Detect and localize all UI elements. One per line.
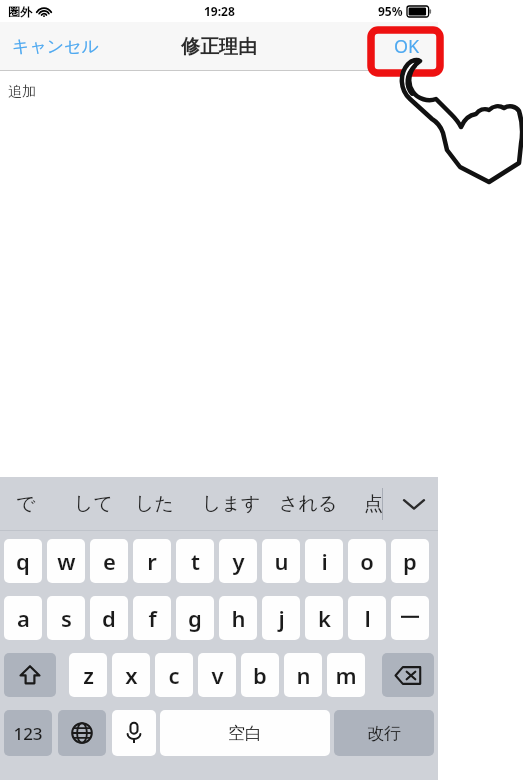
staticText: o — [360, 546, 374, 576]
button[interactable]: 音声入力 — [112, 710, 156, 756]
staticText: i — [321, 546, 328, 576]
button[interactable]: Backspace — [382, 653, 434, 697]
button[interactable]: して — [74, 477, 113, 531]
button[interactable]: s — [47, 596, 85, 640]
staticText: r — [147, 546, 157, 576]
button[interactable]: h — [219, 596, 257, 640]
staticText: 123 — [13, 722, 43, 745]
button[interactable]: o — [348, 539, 386, 583]
button[interactable]: 空白 — [160, 710, 330, 756]
staticText: n — [296, 660, 311, 690]
staticText: k — [318, 603, 331, 633]
button[interactable]: k — [305, 596, 343, 640]
staticText: s — [61, 603, 72, 633]
button[interactable]: z — [69, 653, 107, 697]
staticText: して — [74, 492, 113, 516]
staticText: p — [403, 546, 417, 576]
button[interactable]: Shift — [4, 653, 56, 697]
staticText: u — [274, 546, 289, 576]
staticText: した — [135, 492, 174, 516]
button[interactable]: y — [219, 539, 257, 583]
button[interactable]: j — [262, 596, 300, 640]
button[interactable]: キャンセル — [12, 36, 99, 57]
button[interactable]: 追加 — [0, 71, 438, 477]
staticText: l — [364, 603, 371, 633]
staticText: w — [57, 546, 76, 576]
button[interactable]: します — [202, 477, 261, 531]
staticText: 点 — [364, 492, 383, 516]
button[interactable]: l — [348, 596, 386, 640]
staticText: 改行 — [367, 723, 401, 744]
button[interactable]: g — [176, 596, 214, 640]
button[interactable]: p — [391, 539, 429, 583]
button[interactable]: で — [16, 477, 36, 531]
button[interactable]: OK — [394, 34, 420, 59]
staticText: x — [125, 660, 138, 690]
button[interactable]: 候補を閉じる — [390, 477, 438, 531]
button[interactable]: u — [262, 539, 300, 583]
staticText: 追加 — [8, 83, 36, 101]
staticText: OK — [394, 34, 420, 59]
button[interactable]: v — [198, 653, 236, 697]
staticText: e — [103, 546, 116, 576]
button[interactable]: e — [90, 539, 128, 583]
button[interactable]: w — [47, 539, 85, 583]
button[interactable]: r — [133, 539, 171, 583]
staticText: j — [278, 603, 285, 633]
staticText: a — [17, 603, 30, 633]
button[interactable]: m — [327, 653, 365, 697]
staticText: 95% — [378, 3, 403, 19]
button[interactable]: i — [305, 539, 343, 583]
button[interactable]: される — [279, 477, 338, 531]
staticText: 空白 — [228, 723, 262, 744]
staticText: ー — [399, 604, 421, 632]
button[interactable]: q — [4, 539, 42, 583]
staticText: m — [335, 660, 357, 690]
button[interactable]: 言語切替 — [58, 710, 106, 756]
button[interactable]: n — [284, 653, 322, 697]
button[interactable]: f — [133, 596, 171, 640]
button[interactable]: b — [241, 653, 279, 697]
button[interactable]: t — [176, 539, 214, 583]
staticText: y — [232, 546, 245, 576]
staticText: q — [16, 546, 30, 576]
staticText: します — [202, 492, 261, 516]
staticText: g — [188, 603, 202, 633]
staticText: で — [16, 492, 36, 516]
staticText: d — [102, 603, 116, 633]
button[interactable]: 改行 — [334, 710, 434, 756]
staticText: f — [148, 603, 157, 633]
staticText: v — [211, 660, 224, 690]
staticText: c — [168, 660, 180, 690]
button[interactable]: 123 — [4, 710, 52, 756]
button[interactable]: x — [112, 653, 150, 697]
staticText: b — [253, 660, 267, 690]
button[interactable]: a — [4, 596, 42, 640]
staticText: 19:28 — [204, 3, 235, 19]
staticText: h — [231, 603, 246, 633]
staticText: キャンセル — [12, 36, 99, 57]
staticText: される — [279, 492, 338, 516]
staticText: z — [83, 660, 94, 690]
button[interactable]: c — [155, 653, 193, 697]
button[interactable]: ー — [391, 596, 429, 640]
staticText: t — [191, 546, 200, 576]
button[interactable]: した — [135, 477, 174, 531]
staticText: 修正理由 — [181, 35, 257, 59]
button[interactable]: d — [90, 596, 128, 640]
staticText: 圏外 — [8, 4, 32, 19]
